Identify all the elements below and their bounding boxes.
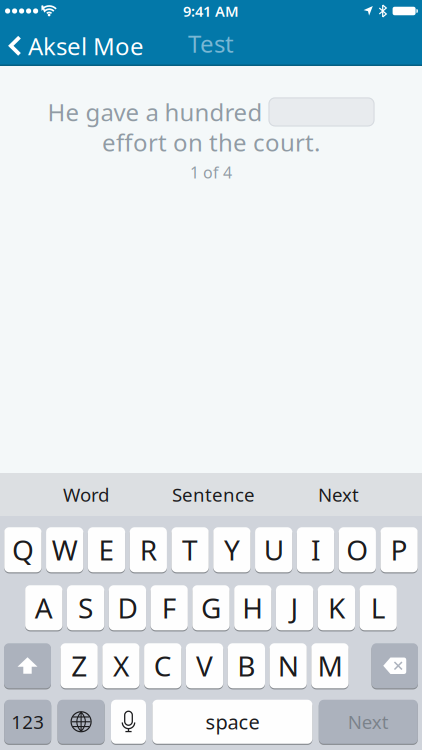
staticText: 123 — [11, 709, 44, 734]
staticText: Aksel Moe — [28, 30, 144, 62]
button[interactable]: E — [88, 527, 125, 573]
staticText: He gave a hundred — [47, 96, 262, 128]
button[interactable]: Word — [63, 482, 109, 507]
button[interactable]: T — [171, 527, 209, 573]
button[interactable]: W — [46, 527, 83, 573]
staticText: Test — [188, 28, 234, 59]
staticText: U — [264, 531, 284, 568]
button[interactable]: Z — [60, 643, 98, 689]
staticText: V — [196, 647, 213, 684]
button[interactable]: B — [228, 643, 265, 689]
staticText: J — [291, 589, 299, 626]
staticText: Z — [71, 647, 87, 684]
staticText: R — [140, 531, 157, 568]
button[interactable]: O — [339, 527, 376, 573]
staticText: G — [201, 589, 221, 626]
button[interactable]: K — [318, 585, 355, 631]
button[interactable]: I — [297, 527, 334, 573]
button[interactable]: Y — [213, 527, 250, 573]
staticText: 1 of 4 — [190, 162, 232, 183]
button[interactable]: Q — [4, 527, 41, 573]
staticText: E — [98, 531, 114, 568]
button[interactable]: Back — [9, 30, 144, 62]
button[interactable]: D — [109, 585, 146, 631]
staticText: 9:41 AM — [183, 1, 239, 21]
staticText: L — [371, 589, 386, 626]
button[interactable]: N — [269, 643, 307, 689]
staticText: N — [278, 647, 299, 684]
staticText: S — [78, 589, 93, 626]
staticText: K — [328, 589, 345, 626]
button[interactable]: U — [255, 527, 292, 573]
staticText: O — [346, 531, 368, 568]
staticText: Sentence — [172, 482, 255, 507]
button[interactable]: X — [102, 643, 140, 689]
button[interactable]: Sentence — [172, 482, 255, 507]
button[interactable]: Next — [318, 482, 359, 507]
button[interactable]: Dictate — [111, 699, 146, 744]
button[interactable]: space — [152, 699, 312, 744]
button[interactable]: C — [144, 643, 181, 689]
staticText: Y — [224, 531, 240, 568]
button[interactable]: Next — [319, 699, 418, 744]
button[interactable]: R — [130, 527, 167, 573]
button[interactable]: Next keyboard — [58, 699, 105, 744]
staticText: A — [35, 589, 53, 626]
staticText: F — [162, 589, 177, 626]
staticText: effort on the court. — [102, 126, 320, 158]
button[interactable]: F — [150, 585, 188, 631]
staticText: D — [117, 589, 137, 626]
button[interactable]: G — [192, 585, 230, 631]
staticText: W — [52, 531, 78, 568]
button[interactable]: A — [25, 585, 62, 631]
staticText: Q — [12, 531, 34, 568]
staticText: Next — [348, 709, 389, 734]
staticText: M — [317, 647, 342, 684]
staticText: space — [205, 708, 259, 735]
staticText: I — [311, 531, 320, 568]
button[interactable]: 123 — [4, 699, 51, 744]
staticText: B — [237, 647, 255, 684]
staticText: P — [391, 531, 408, 568]
button[interactable]: J — [276, 585, 313, 631]
button[interactable]: M — [311, 643, 349, 689]
staticText: Next — [318, 482, 359, 507]
staticText: X — [113, 647, 129, 684]
button[interactable]: V — [186, 643, 223, 689]
button[interactable]: Delete — [371, 643, 418, 689]
staticText: T — [182, 531, 198, 568]
staticText: Word — [63, 482, 109, 507]
button[interactable]: P — [380, 527, 418, 573]
button[interactable]: L — [360, 585, 397, 631]
button[interactable]: S — [67, 585, 104, 631]
staticText: H — [242, 589, 263, 626]
button[interactable]: Shift — [4, 643, 51, 689]
button[interactable]: H — [234, 585, 271, 631]
staticText: C — [154, 647, 172, 684]
